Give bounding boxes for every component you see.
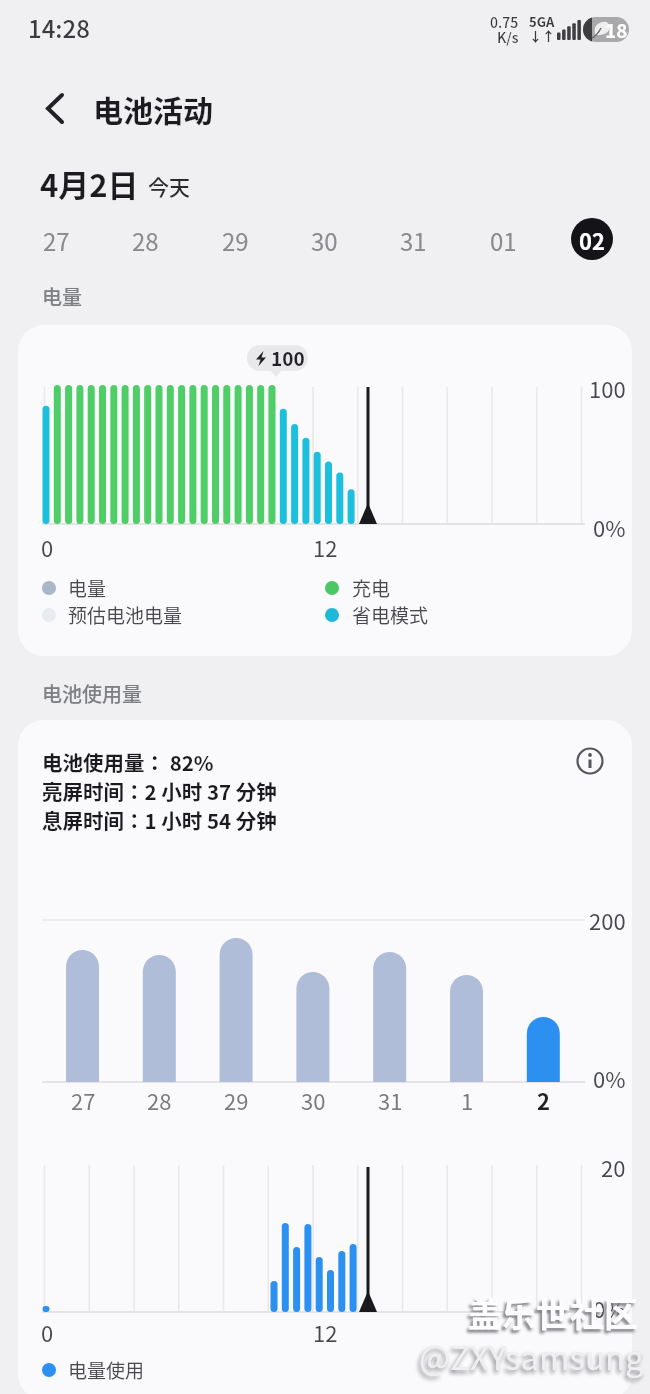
staticText: 27 <box>43 223 70 258</box>
button[interactable]: 02 <box>566 214 618 266</box>
staticText: 省电模式 <box>352 601 429 629</box>
button[interactable]: 01 <box>477 214 529 266</box>
staticText: 充电 <box>352 574 391 602</box>
staticText: 27 <box>71 1084 96 1116</box>
staticText: 0 <box>41 1316 54 1348</box>
staticText: 0.75 <box>490 12 519 32</box>
staticText: 息屏时间：1 小时 54 分钟 <box>42 805 277 835</box>
staticText: 0% <box>593 1292 626 1324</box>
staticText: 电池活动 <box>93 87 213 130</box>
staticText: 100 <box>271 344 305 372</box>
staticText: 30 <box>301 1084 326 1116</box>
staticText: 电池使用量： 82% <box>42 747 214 777</box>
staticText: 02 <box>579 224 605 256</box>
staticText: 盖乐世社区 <box>468 1288 638 1337</box>
staticText: 今天 <box>148 171 190 201</box>
staticText: 100 <box>589 372 626 404</box>
button[interactable]: 30 <box>298 214 350 266</box>
staticText: 5GA <box>529 12 555 31</box>
staticText: 电量 <box>68 574 107 602</box>
staticText: 12 <box>313 531 338 563</box>
staticText: 1 <box>461 1084 474 1116</box>
staticText: 电池使用量 <box>42 679 142 708</box>
staticText: 30 <box>311 223 338 258</box>
staticText: 29 <box>224 1084 249 1116</box>
staticText: 0% <box>593 1062 626 1094</box>
button[interactable]: 29 <box>209 214 261 266</box>
staticText: 2 <box>537 1084 550 1116</box>
staticText: 200 <box>589 904 626 936</box>
staticText: 29 <box>222 223 249 258</box>
staticText: 亮屏时间：2 小时 37 分钟 <box>42 776 277 806</box>
button[interactable] <box>572 743 608 779</box>
button[interactable] <box>34 84 80 130</box>
staticText: 28 <box>132 223 159 258</box>
staticText: ↓↑ <box>529 26 556 45</box>
staticText: 预估电池电量 <box>68 601 183 629</box>
staticText: 电量使用 <box>68 1356 145 1384</box>
staticText: 12 <box>313 1316 338 1348</box>
staticText: 4月2日 <box>40 161 139 206</box>
staticText: 28 <box>147 1084 172 1116</box>
staticText: @ZXYsamsung <box>419 1332 644 1380</box>
staticText: 18 <box>605 16 628 44</box>
staticText: 电量 <box>42 282 82 311</box>
staticText: 20 <box>601 1151 626 1183</box>
staticText: K/s <box>497 27 519 47</box>
staticText: 0% <box>593 511 626 543</box>
staticText: 14:28 <box>28 10 90 45</box>
staticText: 31 <box>378 1084 403 1116</box>
staticText: 01 <box>490 223 517 258</box>
button[interactable]: 27 <box>30 214 82 266</box>
staticText: 0 <box>41 531 54 563</box>
staticText: 31 <box>400 223 427 258</box>
button[interactable]: 31 <box>387 214 439 266</box>
button[interactable]: 28 <box>119 214 171 266</box>
